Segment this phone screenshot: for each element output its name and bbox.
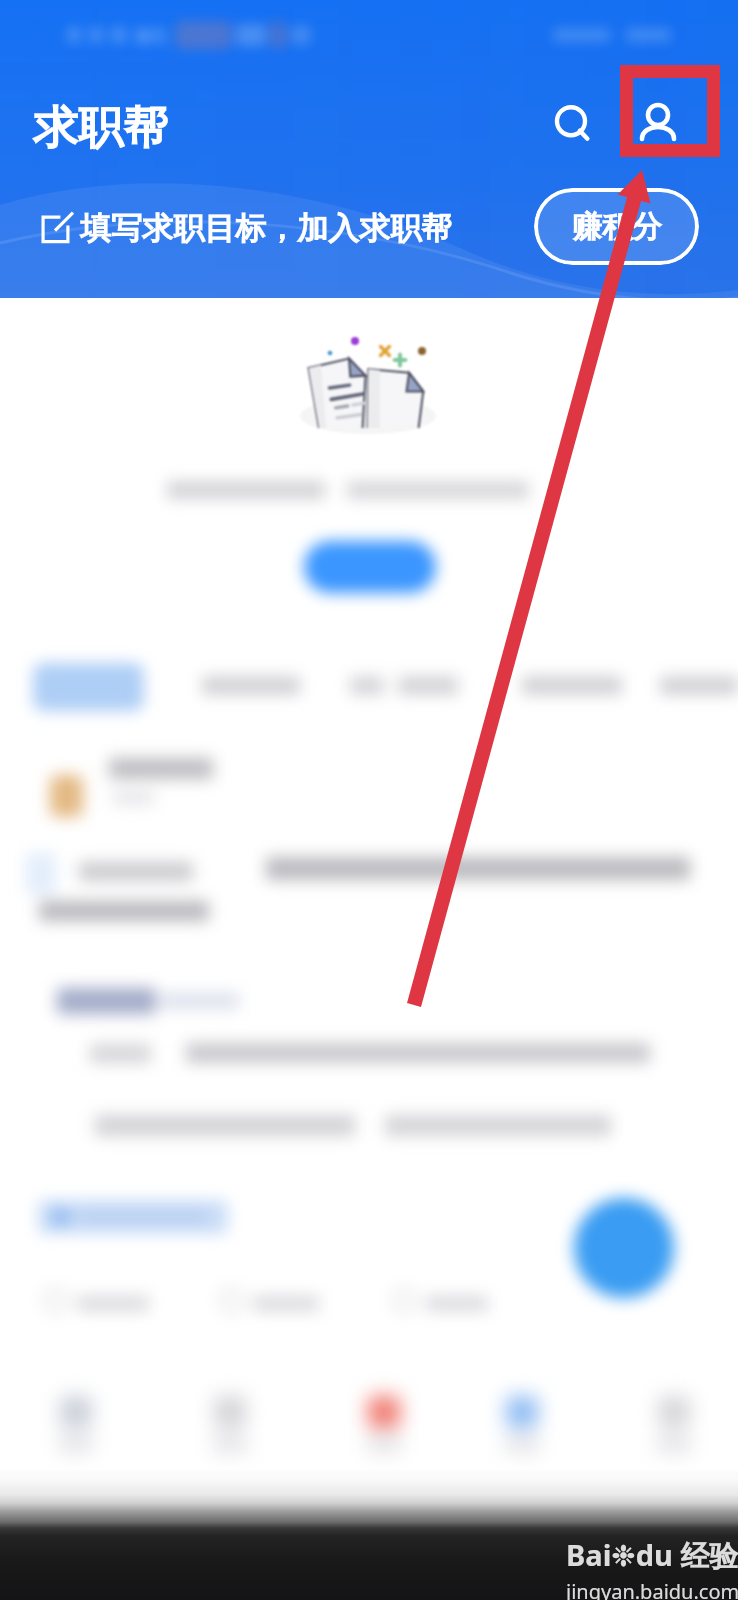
staticText: Bai❉du 经验 (566, 1535, 738, 1575)
staticText: jingyan.baidu.com (566, 1578, 738, 1600)
button[interactable]: Search (533, 82, 609, 158)
button[interactable] (219, 1288, 319, 1313)
button[interactable]: 填写求职目标，加入求职帮 (39, 209, 452, 248)
button[interactable] (0, 724, 738, 960)
button[interactable] (0, 960, 738, 1176)
button[interactable] (304, 541, 436, 593)
button[interactable]: 赚积分 (534, 188, 699, 265)
staticText: 赚积分 (572, 208, 662, 246)
button[interactable]: Compose message (574, 1198, 674, 1298)
button[interactable]: Profile (620, 85, 696, 161)
button[interactable] (38, 1200, 228, 1234)
staticText: 求职帮 (33, 100, 168, 157)
button[interactable] (43, 1288, 149, 1313)
staticText: 填写求职目标，加入求职帮 (80, 209, 452, 248)
button[interactable] (392, 1288, 488, 1313)
staticText: B/S (136, 23, 166, 49)
button[interactable] (0, 648, 738, 724)
